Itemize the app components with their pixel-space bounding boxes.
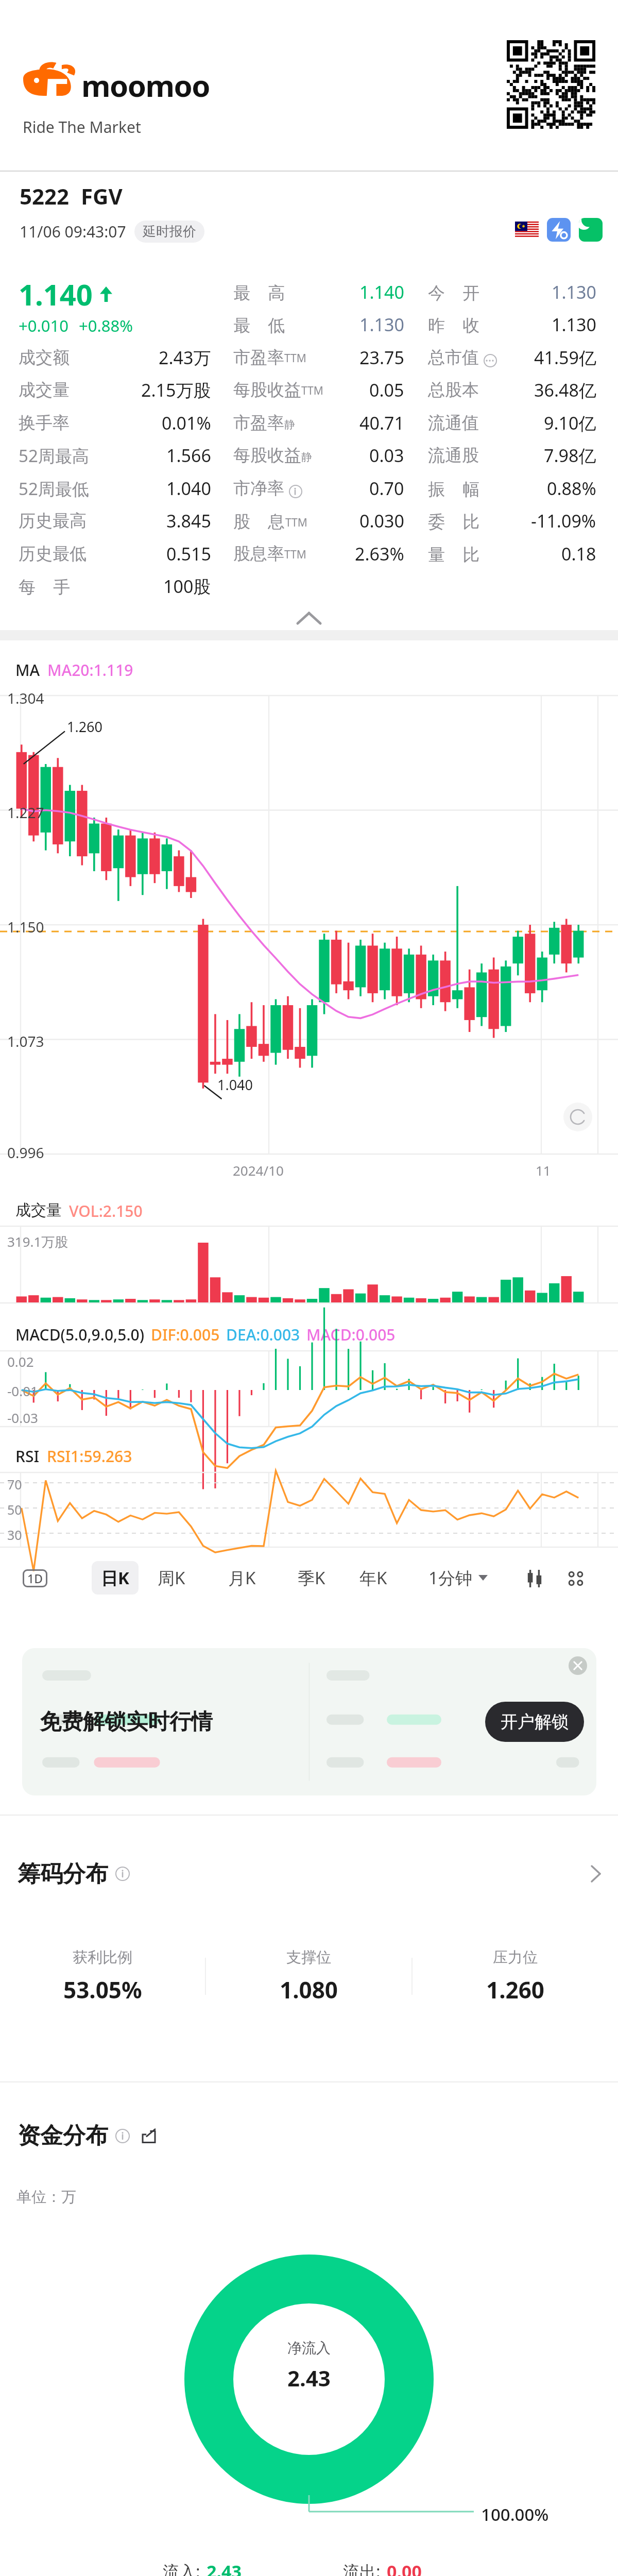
button[interactable]: 年K (353, 1561, 393, 1595)
staticText: -11.09% (531, 509, 596, 533)
staticText: 市净率 (233, 478, 284, 499)
staticText: 1.130 (359, 313, 404, 336)
staticText: 获利比例 (73, 1948, 132, 1967)
staticText: 历史最低 (19, 543, 87, 565)
staticText: 流入: (163, 2560, 200, 2576)
button[interactable]: 1分钟 (422, 1561, 494, 1595)
staticText: 100.00% (481, 2503, 549, 2526)
staticText: 每股收益 (233, 445, 301, 466)
staticText: 0.030 (359, 509, 404, 533)
staticText: 静 (301, 450, 312, 464)
staticText: 40.71 (359, 411, 404, 435)
staticText: 1.260 (486, 1974, 545, 2005)
button[interactable]: 日K (92, 1561, 139, 1595)
staticText: 委 比 (428, 510, 480, 533)
staticText: 2.15万股 (141, 378, 211, 402)
staticText: 1分钟 (428, 1566, 472, 1589)
button[interactable]: Level 0 quotes (547, 218, 571, 242)
staticText: 2.63% (355, 542, 404, 566)
staticText: 11/06 09:43:07 (20, 221, 126, 242)
staticText: 0.00 (387, 2560, 422, 2576)
staticText: 0.88% (547, 477, 596, 500)
staticText: 每股收益 (233, 379, 301, 401)
button[interactable]: 1D (23, 1569, 47, 1587)
staticText: 1.304 (7, 688, 44, 708)
staticText: TTM (284, 547, 306, 562)
staticText: 每 手 (19, 575, 71, 598)
staticText: 月K (228, 1566, 256, 1589)
staticText: 成交额 (19, 347, 70, 368)
button[interactable]: 筹码分布 (0, 1855, 618, 1893)
staticText: FGV (81, 181, 123, 211)
button[interactable]: 延时报价 (134, 221, 204, 243)
staticText: 流出: (343, 2560, 381, 2576)
staticText: -0.03 (7, 1409, 38, 1427)
staticText: 今 开 (428, 281, 480, 304)
staticText: MA (15, 659, 40, 681)
staticText: +0.88% (79, 315, 133, 336)
staticText: -0.01 (7, 1382, 38, 1400)
staticText: 0.01% (162, 411, 211, 435)
staticText: 1.073 (7, 1031, 44, 1051)
staticText: 1D (27, 1570, 43, 1586)
staticText: 0.515 (166, 542, 211, 566)
staticText: 总股本 (428, 379, 479, 401)
staticText: 2024/10 (233, 1161, 284, 1179)
staticText: TTM (301, 383, 323, 398)
staticText: 52周最高 (19, 444, 89, 467)
staticText: 0.05 (369, 378, 404, 402)
staticText: 1.040 (217, 1075, 253, 1094)
staticText: 50 (7, 1501, 22, 1518)
staticText: 52周最低 (19, 477, 89, 500)
staticText: VOL:2.150 (69, 1200, 143, 1222)
staticText: 开户解锁 (501, 1711, 569, 1733)
staticText: 股息率 (233, 543, 284, 565)
staticText: 周K (158, 1566, 185, 1589)
staticText: TTM (285, 515, 307, 530)
staticText: 量 比 (428, 543, 480, 566)
staticText: 1.130 (552, 313, 596, 336)
staticText: 日K (101, 1566, 129, 1589)
staticText: RSI (15, 1446, 40, 1467)
staticText: 0.02 (7, 1352, 34, 1370)
button[interactable]: 周K (151, 1561, 192, 1595)
staticText: 换手率 (19, 412, 70, 434)
staticText: 30 (7, 1526, 22, 1544)
staticText: 1.566 (166, 444, 211, 467)
staticText: 压力位 (493, 1948, 538, 1967)
staticText: 0.03 (369, 444, 404, 467)
staticText: 1.150 (7, 917, 44, 937)
staticText: MACD(5.0,9.0,5.0) (15, 1324, 145, 1345)
staticText: 1.130 (552, 280, 596, 304)
button[interactable]: 季K (291, 1561, 332, 1595)
staticText: 2.43万 (159, 346, 211, 369)
staticText: 振 幅 (428, 477, 480, 500)
staticText: 1.140 (19, 275, 93, 314)
button[interactable]: More indicators (560, 1563, 591, 1594)
staticText: 9.10亿 (544, 411, 596, 435)
button[interactable]: Candlestick view (519, 1563, 550, 1594)
staticText: 成交量 (15, 1200, 62, 1220)
staticText: 历史最高 (19, 510, 87, 532)
staticText: 股 息 (233, 510, 285, 533)
button[interactable]: 开户解锁 (485, 1702, 584, 1742)
staticText: 市盈率 (233, 412, 284, 434)
staticText: 0.70 (369, 477, 404, 500)
button[interactable]: Close banner (569, 1656, 587, 1675)
button[interactable]: 月K (222, 1561, 262, 1595)
staticText: 1.260 (67, 717, 103, 736)
staticText: 0.996 (7, 1143, 44, 1162)
staticText: 资金分布 (18, 2122, 108, 2150)
staticText: 2.43 (207, 2560, 242, 2576)
button[interactable]: 免费解锁实时行情 (22, 1648, 596, 1795)
button[interactable]: After hours (579, 218, 603, 242)
staticText: MA20:1.119 (47, 659, 133, 681)
staticText: 支撑位 (286, 1948, 331, 1967)
staticText: 市盈率 (233, 347, 284, 368)
staticText: 净流入 (287, 2339, 331, 2357)
staticText: 单位：万 (16, 2188, 76, 2207)
button[interactable]: Share (141, 2128, 157, 2144)
staticText: 0.18 (561, 542, 596, 566)
staticText: 1.140 (359, 280, 404, 304)
staticText: 总市值 (428, 347, 479, 368)
